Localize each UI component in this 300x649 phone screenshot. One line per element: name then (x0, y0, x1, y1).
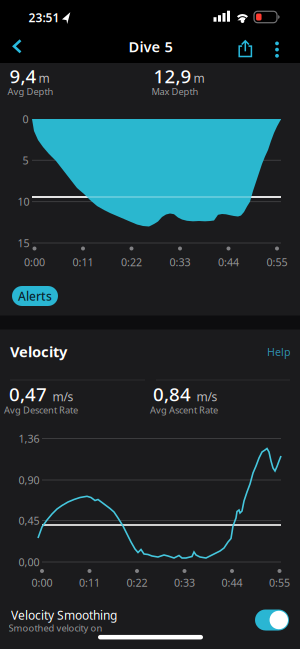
button[interactable]: Share (238, 40, 252, 58)
staticText: Velocity (10, 342, 67, 361)
staticText: 23:51 (28, 9, 59, 25)
button[interactable]: Back (12, 39, 23, 54)
staticText: 10 (17, 194, 29, 209)
staticText: 0,47 (9, 382, 47, 406)
staticText: 0:11 (72, 255, 93, 269)
staticText: 0:33 (174, 575, 195, 590)
staticText: m/s (52, 388, 73, 404)
staticText: 0:44 (221, 575, 242, 590)
staticText: Avg Descent Rate (4, 404, 78, 416)
staticText: Avg Depth (7, 85, 53, 98)
button[interactable]: Velocity Smoothing (255, 609, 289, 630)
staticText: Smoothed velocity on (8, 622, 102, 634)
button[interactable]: Help (264, 344, 294, 360)
button[interactable]: Alerts (12, 286, 58, 306)
staticText: 5 (22, 153, 28, 167)
staticText: Velocity Smoothing (11, 607, 117, 623)
staticText: Max Depth (151, 85, 198, 98)
staticText: 0:22 (121, 255, 142, 269)
staticText: Avg Ascent Rate (150, 404, 218, 416)
staticText: 0:55 (269, 575, 290, 590)
staticText: 0:44 (218, 255, 239, 269)
staticText: 0,90 (18, 473, 39, 487)
staticText: Dive 5 (128, 37, 172, 56)
staticText: m (193, 70, 204, 86)
staticText: 0:33 (169, 255, 190, 269)
staticText: 0:00 (31, 575, 52, 590)
staticText: 1,36 (18, 431, 39, 446)
staticText: 9,4 (9, 64, 36, 88)
staticText: m/s (196, 388, 217, 404)
staticText: 0,45 (18, 513, 39, 528)
staticText: 15 (17, 236, 29, 250)
staticText: Alerts (18, 288, 52, 304)
staticText: 0,00 (18, 555, 39, 569)
staticText: 0 (22, 112, 28, 126)
staticText: 0:55 (266, 255, 287, 269)
staticText: 0,84 (153, 382, 191, 406)
staticText: 12,9 (153, 64, 191, 88)
staticText: 0:00 (24, 255, 45, 269)
staticText: 0:22 (126, 575, 147, 590)
staticText: Help (267, 345, 291, 359)
button[interactable]: More (274, 41, 279, 58)
staticText: m (38, 70, 49, 86)
staticText: 0:11 (79, 575, 100, 590)
